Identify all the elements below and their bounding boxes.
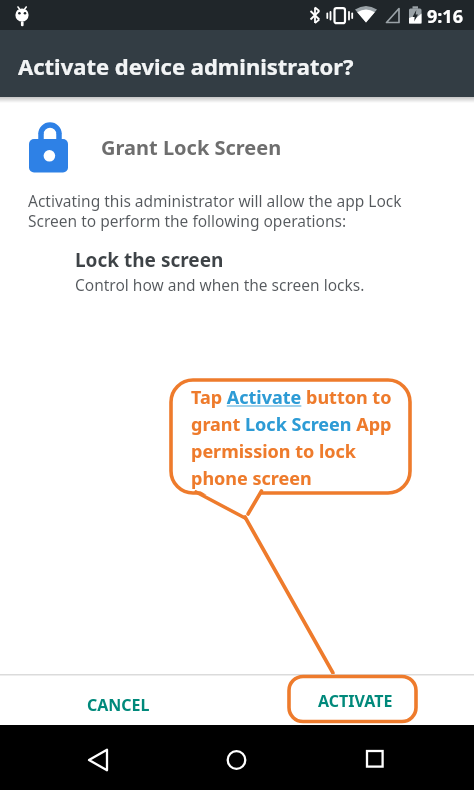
staticText: CANCEL [87,694,150,716]
staticText: Tap Activate button to grant Lock Screen… [191,385,392,490]
staticText: ACTIVATE [318,690,393,712]
button[interactable] [158,725,316,790]
staticText: Control how and when the screen locks. [75,274,365,295]
staticText: Lock the screen [75,247,224,273]
staticText: Activate device administrator? [18,51,354,81]
button[interactable]: CANCEL [78,690,158,720]
button[interactable] [316,725,474,790]
button[interactable]: ACTIVATE [300,686,410,716]
button[interactable] [0,725,158,790]
staticText: Activating this administrator will allow… [28,190,402,232]
staticText: Grant Lock Screen [101,134,282,161]
staticText: 9:16 [427,4,463,29]
